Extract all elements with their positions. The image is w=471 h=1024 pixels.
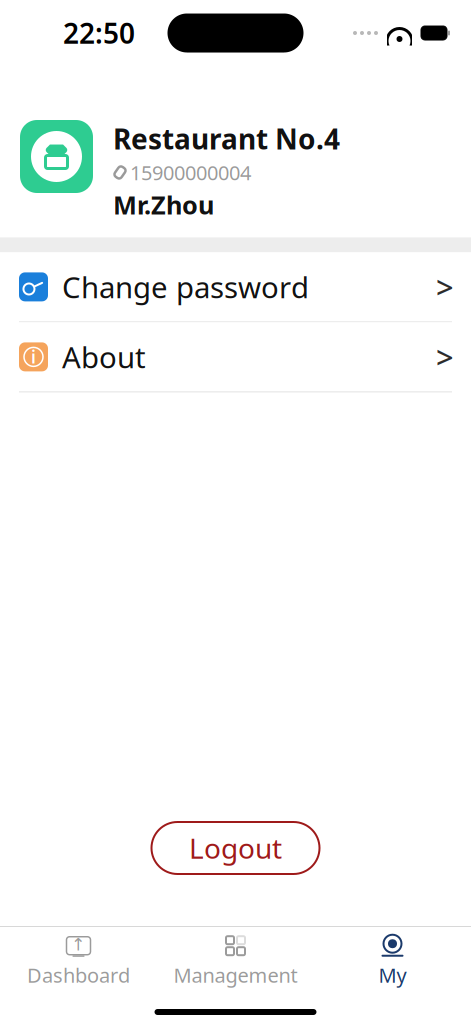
- button[interactable]: ↑: [0, 933, 157, 989]
- button[interactable]: Logout: [151, 822, 319, 874]
- staticText: ↑: [71, 935, 86, 954]
- staticText: >: [436, 266, 454, 307]
- staticText: Dashboard: [27, 962, 130, 988]
- staticText: Mr.Zhou: [113, 188, 214, 221]
- button[interactable]: Change password: [0, 252, 471, 321]
- staticText: Restaurant No.4: [113, 120, 340, 157]
- staticText: >: [436, 336, 454, 377]
- staticText: About: [62, 337, 146, 376]
- button[interactable]: i: [0, 322, 471, 391]
- staticText: Management: [173, 962, 297, 988]
- button[interactable]: Management: [157, 933, 314, 989]
- staticText: Change password: [62, 267, 309, 306]
- staticText: My: [378, 962, 406, 988]
- staticText: 15900000004: [130, 159, 251, 186]
- staticText: 22:50: [63, 14, 135, 52]
- staticText: Logout: [189, 829, 282, 867]
- staticText: i: [31, 345, 36, 368]
- button[interactable]: My: [314, 933, 471, 989]
